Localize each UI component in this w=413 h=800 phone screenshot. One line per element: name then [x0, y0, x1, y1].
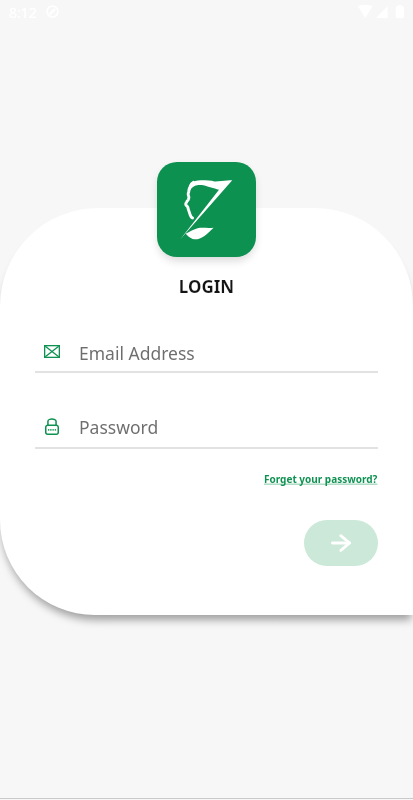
button[interactable]: Sign in [304, 520, 378, 566]
button[interactable]: Email Address [35, 329, 378, 373]
button[interactable]: Password [35, 405, 378, 449]
staticText: Password [79, 415, 159, 439]
staticText: Email Address [79, 341, 195, 365]
button[interactable]: Forget your password? [262, 470, 380, 488]
staticText: LOGIN [0, 275, 413, 298]
staticText: Forget your password? [264, 472, 378, 486]
